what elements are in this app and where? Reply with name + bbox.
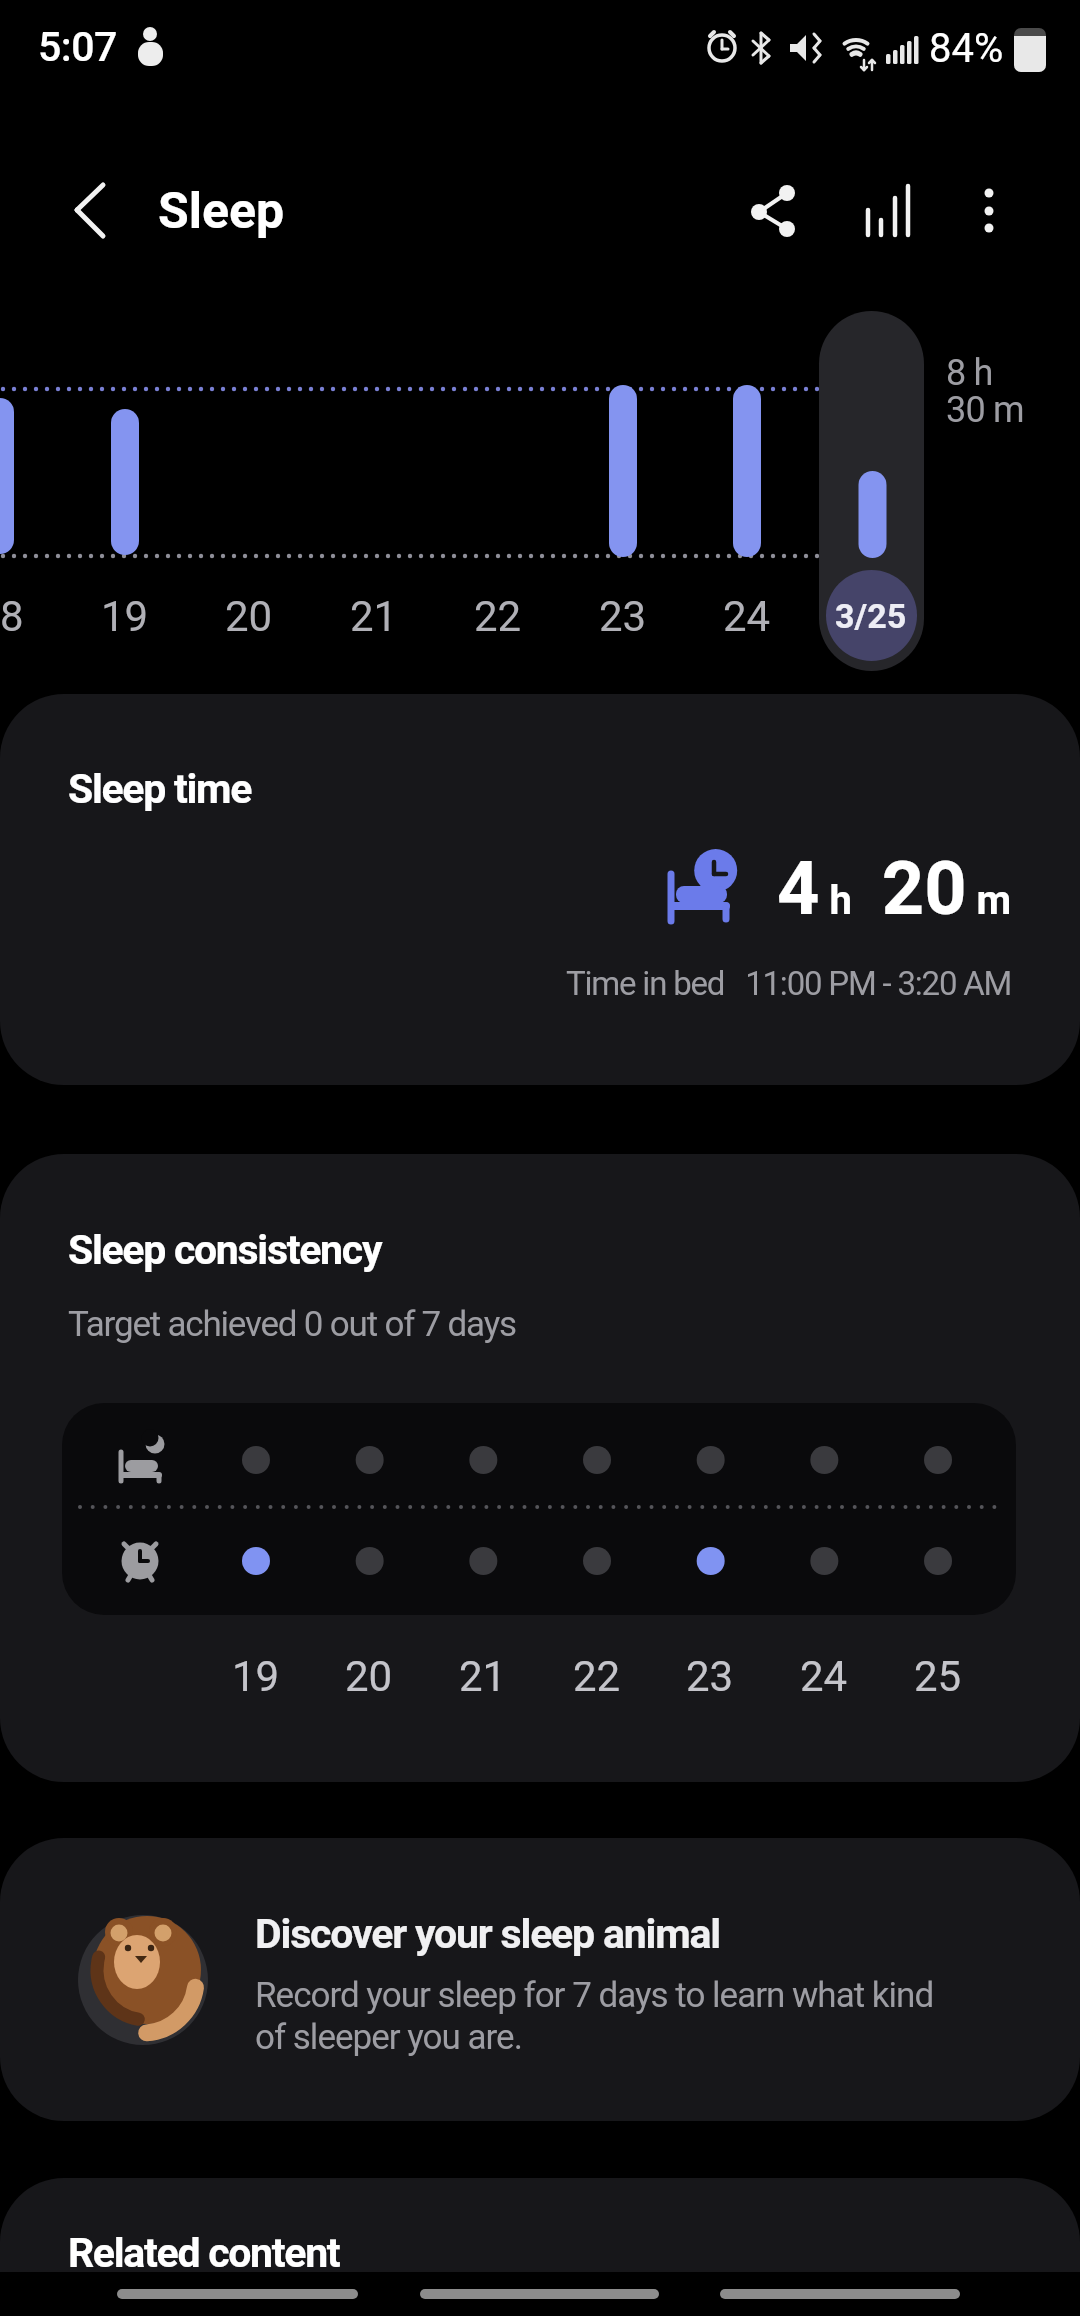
staticText: 22 [474, 592, 522, 641]
staticText: 4 h 20 m [777, 845, 1012, 932]
staticText: 20 [345, 1652, 393, 1701]
staticText: 30 m [946, 389, 1024, 431]
staticText: Discover your sleep animal [255, 1910, 720, 1958]
button[interactable] [0, 694, 1080, 1085]
staticText: Sleep [158, 182, 285, 241]
button[interactable] [50, 172, 126, 248]
button[interactable] [845, 172, 921, 248]
staticText: 19 [232, 1652, 280, 1701]
staticText: 84% [929, 25, 1004, 72]
staticText: 23 [599, 592, 647, 641]
staticText: 23 [686, 1652, 734, 1701]
button[interactable] [0, 1154, 1080, 1782]
staticText: Sleep time [68, 765, 252, 813]
staticText: 20 [225, 592, 273, 641]
staticText: 22 [573, 1652, 621, 1701]
button[interactable] [735, 172, 811, 248]
staticText: Record your sleep for 7 days to learn wh… [255, 1975, 934, 2016]
staticText: 8 h [946, 352, 993, 394]
staticText: 8 [0, 592, 24, 641]
staticText: Target achieved 0 out of 7 days [68, 1304, 516, 1345]
staticText: 24 [723, 592, 771, 641]
staticText: 24 [800, 1652, 848, 1701]
staticText: Sleep consistency [68, 1226, 382, 1274]
button[interactable] [955, 172, 1025, 248]
staticText: 21 [350, 592, 398, 641]
staticText: 25 [914, 1652, 962, 1701]
staticText: of sleeper you are. [255, 2017, 522, 2058]
staticText: 5:07 [38, 23, 117, 71]
staticText: 19 [101, 592, 149, 641]
button[interactable] [0, 1838, 1080, 2121]
staticText: 21 [459, 1652, 507, 1701]
staticText: Related content [68, 2229, 340, 2277]
staticText: Time in bed 11:00 PM - 3:20 AM [566, 964, 1012, 1003]
staticText: 3/25 [835, 596, 907, 636]
button[interactable] [0, 2178, 1080, 2272]
